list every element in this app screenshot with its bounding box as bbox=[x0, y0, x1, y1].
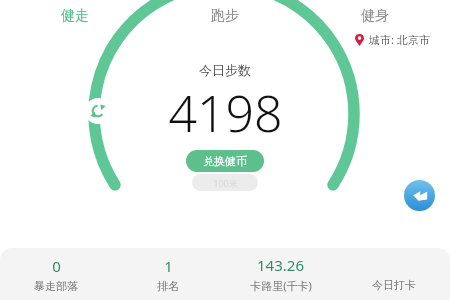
staticText: 卡路里(千卡) bbox=[250, 278, 312, 293]
button[interactable]: 1 bbox=[112, 248, 224, 300]
staticText: 143.26 bbox=[257, 255, 304, 275]
staticText: 暴走部落 bbox=[34, 279, 78, 293]
button[interactable]: Location bbox=[353, 30, 432, 49]
staticText: 4198 bbox=[168, 79, 283, 147]
staticText: 健身 bbox=[361, 7, 389, 25]
other: Location bbox=[355, 34, 364, 46]
staticText: 0 bbox=[52, 256, 61, 276]
button[interactable]: 今日打卡 bbox=[337, 248, 450, 300]
staticText: 健走 bbox=[61, 7, 89, 25]
button[interactable]: 健走 bbox=[0, 0, 150, 32]
staticText: 兑换健币 bbox=[203, 154, 247, 168]
staticText: 城市: 北京市 bbox=[369, 32, 430, 47]
staticText: 1 bbox=[164, 256, 173, 276]
button[interactable]: 跑步 bbox=[150, 0, 300, 32]
staticText: 跑步 bbox=[211, 7, 239, 25]
button[interactable]: Badge bbox=[404, 180, 435, 211]
button[interactable]: 健身 bbox=[300, 0, 450, 32]
button[interactable]: Refresh bbox=[85, 98, 111, 124]
staticText: 100米 bbox=[213, 177, 238, 189]
button[interactable]: 143.26 bbox=[224, 248, 337, 300]
staticText: 今日打卡 bbox=[372, 278, 416, 292]
staticText: 排名 bbox=[157, 279, 179, 293]
button[interactable]: 兑换健币 bbox=[186, 150, 264, 172]
staticText: 今日步数 bbox=[199, 62, 251, 78]
button[interactable]: 0 bbox=[0, 248, 112, 300]
